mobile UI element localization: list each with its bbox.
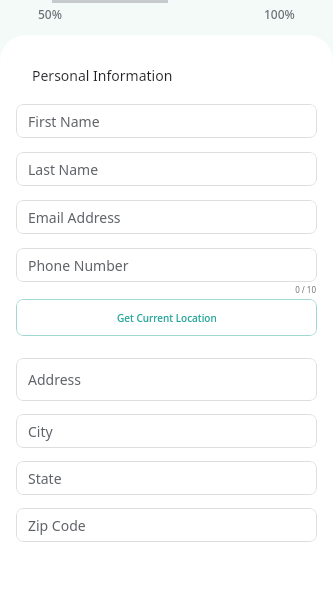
button[interactable]: City: [16, 414, 317, 448]
button[interactable]: Get Current Location: [16, 299, 317, 336]
button[interactable]: Address: [16, 358, 317, 401]
staticText: Email Address: [28, 208, 121, 227]
staticText: Address: [28, 370, 81, 389]
staticText: 100%: [264, 6, 295, 22]
staticText: 50%: [38, 6, 62, 22]
staticText: City: [28, 422, 53, 441]
button[interactable]: State: [16, 461, 317, 495]
staticText: Phone Number: [28, 256, 129, 275]
button[interactable]: Phone Number: [16, 248, 317, 282]
staticText: Zip Code: [28, 516, 86, 535]
staticText: Last Name: [28, 160, 99, 179]
button[interactable]: Email Address: [16, 200, 317, 234]
staticText: Personal Information: [32, 66, 173, 85]
staticText: Get Current Location: [117, 311, 217, 325]
button[interactable]: Last Name: [16, 152, 317, 186]
button[interactable]: First Name: [16, 104, 317, 138]
button[interactable]: Zip Code: [16, 508, 317, 542]
staticText: 0 / 10: [295, 284, 316, 295]
staticText: State: [28, 469, 62, 488]
staticText: First Name: [28, 112, 100, 131]
